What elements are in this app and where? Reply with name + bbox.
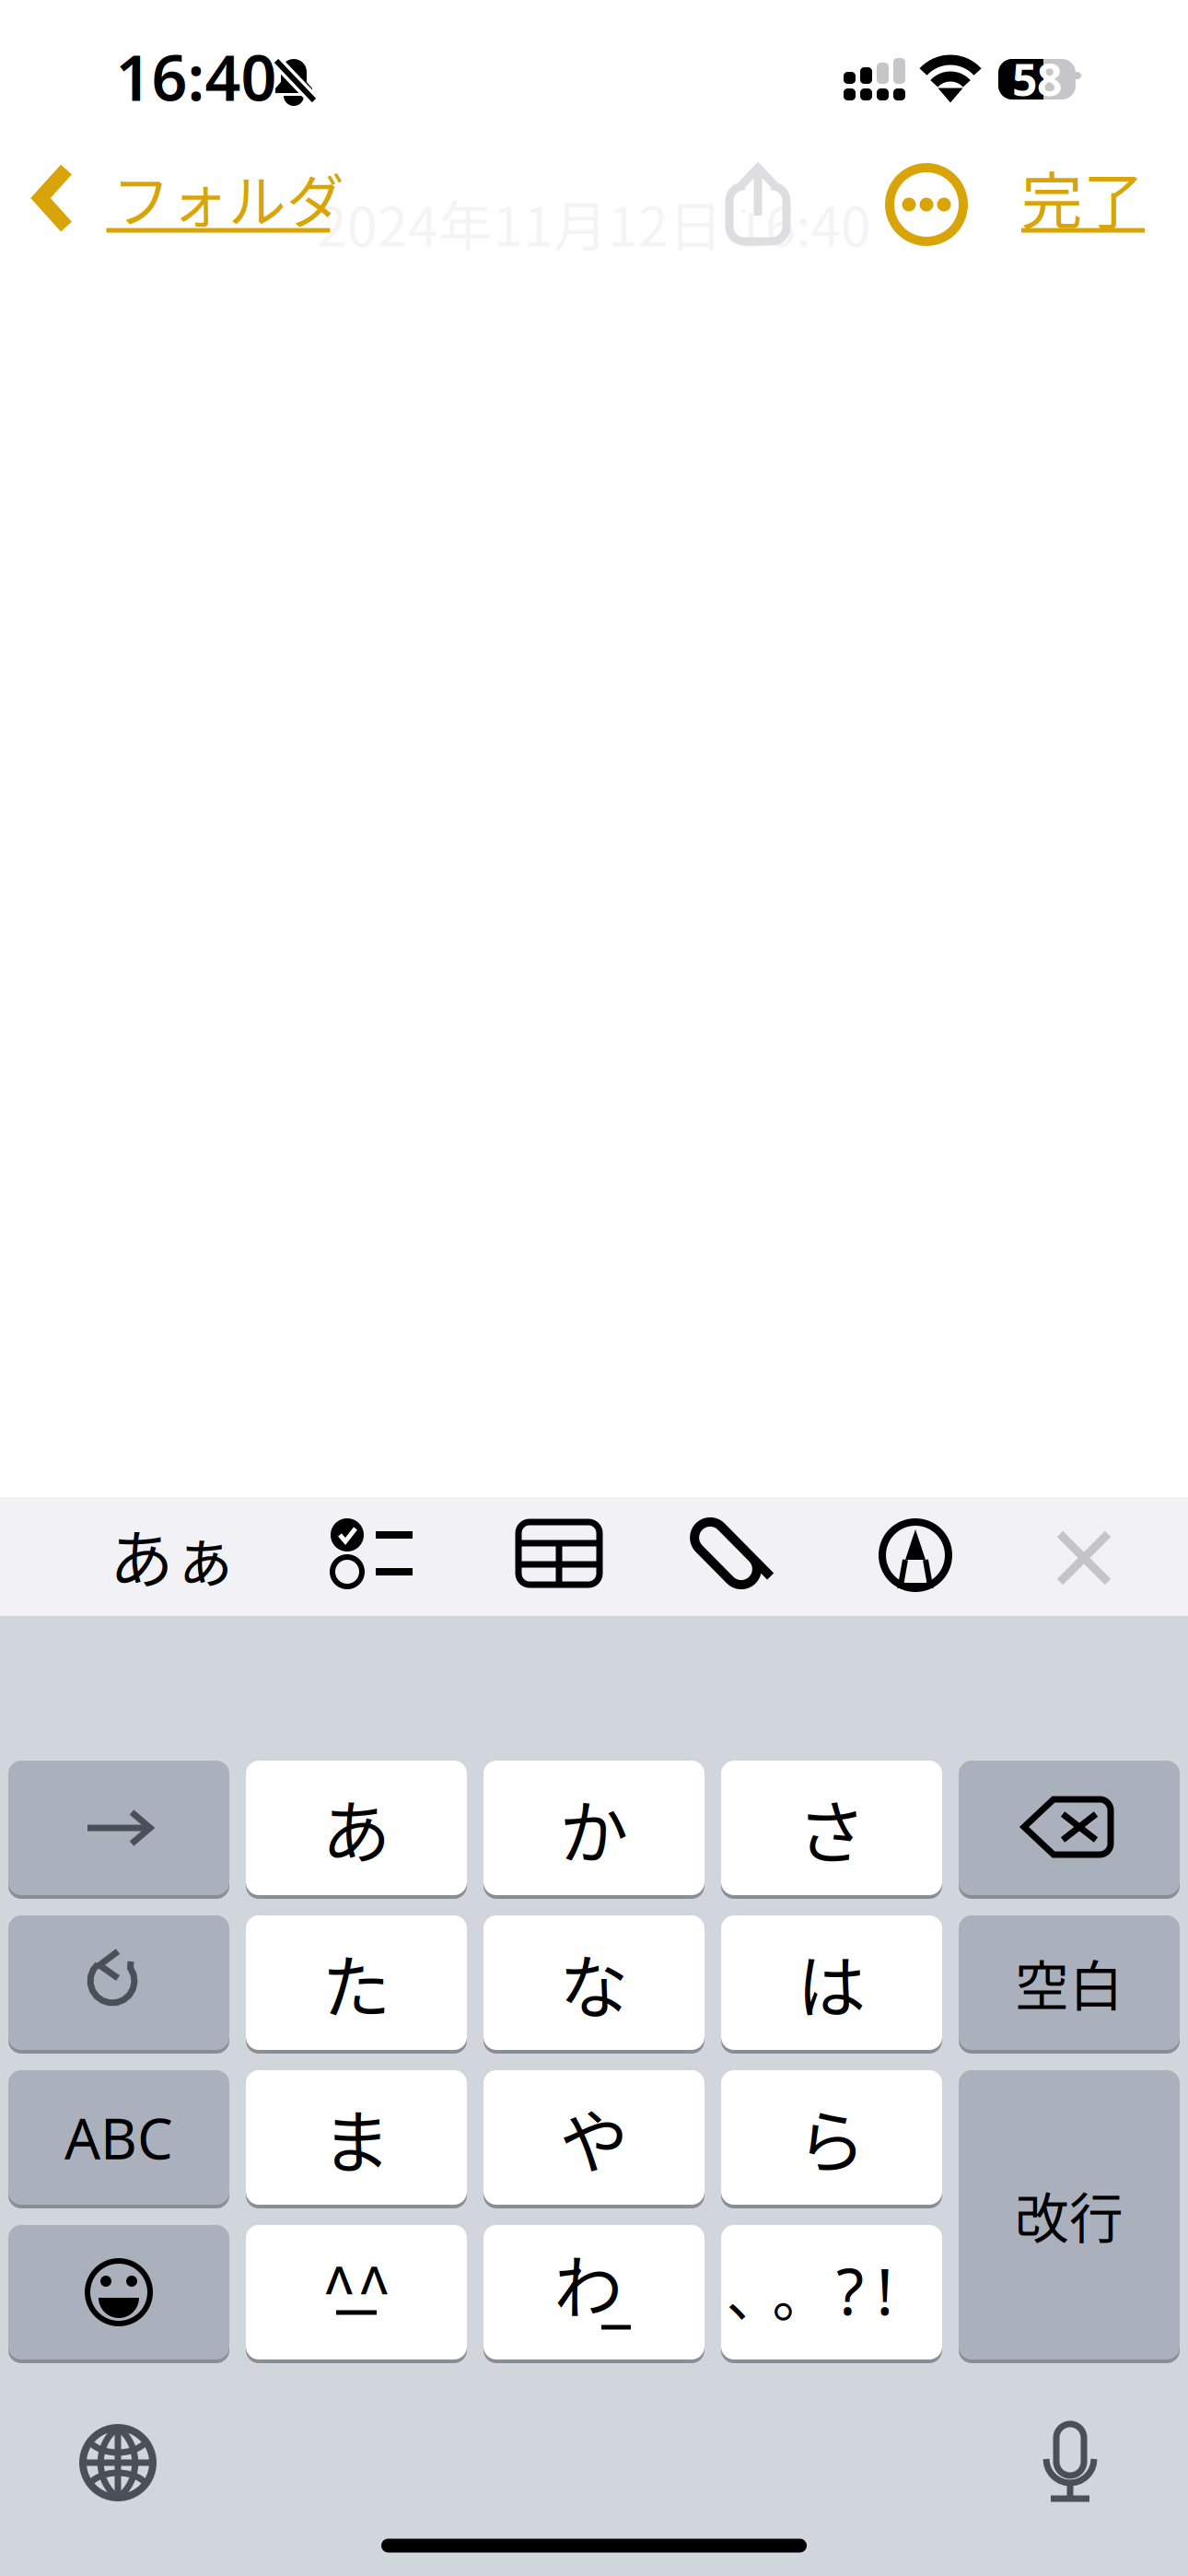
- staticText: 、: [726, 2251, 782, 2333]
- staticText: 16:40: [116, 35, 277, 118]
- button[interactable]: [8, 1761, 229, 1895]
- button[interactable]: な: [483, 1915, 705, 2050]
- button[interactable]: [959, 1761, 1180, 1895]
- staticText: ら: [797, 2088, 866, 2187]
- button[interactable]: Share: [717, 158, 800, 254]
- button[interactable]: わ: [483, 2225, 705, 2359]
- button[interactable]: 空白: [959, 1915, 1180, 2050]
- staticText: 完了: [1021, 153, 1145, 242]
- staticText: あぁ: [110, 1509, 237, 1601]
- button[interactable]: 完了: [1009, 147, 1157, 267]
- staticText: 2024年11月12日 16:40: [317, 184, 871, 262]
- staticText: 改行: [1015, 2176, 1124, 2254]
- button[interactable]: Table: [515, 1518, 603, 1588]
- button[interactable]: か: [483, 1761, 705, 1895]
- button[interactable]: ら: [721, 2070, 942, 2205]
- button[interactable]: Switch keyboard: [79, 2424, 157, 2501]
- staticText: ^^: [321, 2240, 391, 2333]
- staticText: は: [797, 1933, 866, 2032]
- staticText: あ: [322, 1778, 391, 1878]
- button[interactable]: ま: [246, 2070, 467, 2205]
- button[interactable]: Close: [1054, 1528, 1113, 1587]
- staticText: か: [559, 1778, 629, 1878]
- button[interactable]: ^^: [246, 2225, 467, 2359]
- staticText: た: [322, 1933, 391, 2032]
- button[interactable]: あ: [246, 1761, 467, 1895]
- button[interactable]: ABC: [8, 2070, 229, 2205]
- button[interactable]: た: [246, 1915, 467, 2050]
- button[interactable]: フォルダ: [0, 147, 368, 267]
- button[interactable]: Checklist: [330, 1518, 414, 1588]
- staticText: や: [559, 2088, 629, 2187]
- staticText: ま: [322, 2088, 391, 2187]
- staticText: 58: [1012, 50, 1062, 109]
- button[interactable]: Dictation: [1040, 2422, 1101, 2503]
- button[interactable]: や: [483, 2070, 705, 2205]
- staticText: 。: [772, 2251, 828, 2333]
- staticText: わ: [554, 2233, 623, 2333]
- button[interactable]: 改行: [959, 2070, 1180, 2359]
- button[interactable]: Markup: [874, 1514, 957, 1597]
- staticText: ABC: [64, 2100, 173, 2175]
- button[interactable]: [8, 1915, 229, 2050]
- button[interactable]: More: [885, 163, 968, 246]
- button[interactable]: さ: [721, 1761, 942, 1895]
- staticText: フォルダ: [112, 155, 344, 239]
- button[interactable]: Attach: [672, 1498, 783, 1612]
- staticText: な: [559, 1933, 629, 2032]
- button[interactable]: [8, 2225, 229, 2359]
- staticText: ?: [836, 2248, 864, 2333]
- button[interactable]: あぁ: [90, 1495, 256, 1616]
- button[interactable]: 、: [721, 2225, 942, 2359]
- staticText: !: [876, 2248, 894, 2333]
- button[interactable]: は: [721, 1915, 942, 2050]
- staticText: 空白: [1015, 1944, 1124, 2022]
- staticText: さ: [797, 1778, 866, 1878]
